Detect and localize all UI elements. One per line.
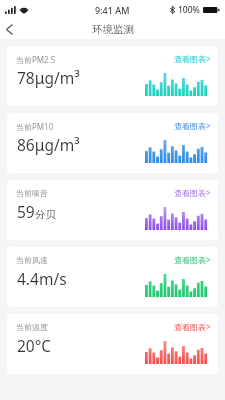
- staticText: 100%: [178, 4, 200, 16]
- staticText: 86μg/m³: [17, 134, 80, 155]
- staticText: 20°C: [17, 335, 52, 356]
- staticText: 当前噪音: [16, 188, 48, 198]
- button[interactable]: Back: [0, 20, 19, 39]
- button[interactable]: 查看图表>: [174, 187, 211, 198]
- staticText: 环境监测: [92, 23, 134, 36]
- staticText: 当前PM10: [16, 121, 54, 132]
- staticText: 4.4m/s: [17, 268, 67, 289]
- button[interactable]: 查看图表>: [174, 53, 211, 64]
- button[interactable]: 当前PM10: [7, 113, 218, 173]
- staticText: 当前风速: [16, 255, 48, 265]
- staticText: 78μg/m³: [17, 67, 80, 88]
- staticText: 59: [17, 201, 35, 222]
- staticText: 9:41 AM: [95, 4, 130, 16]
- button[interactable]: 查看图表>: [174, 254, 211, 265]
- button[interactable]: 当前风速: [7, 247, 218, 307]
- button[interactable]: 查看图表>: [174, 120, 211, 131]
- button[interactable]: 当前噪音: [7, 180, 218, 240]
- button[interactable]: 查看图表>: [174, 321, 211, 332]
- staticText: 分贝: [35, 208, 56, 221]
- staticText: 当前PM2.5: [16, 54, 56, 65]
- staticText: 当前温度: [16, 322, 48, 332]
- button[interactable]: 当前PM2.5: [7, 46, 218, 106]
- button[interactable]: 当前温度: [7, 314, 218, 374]
